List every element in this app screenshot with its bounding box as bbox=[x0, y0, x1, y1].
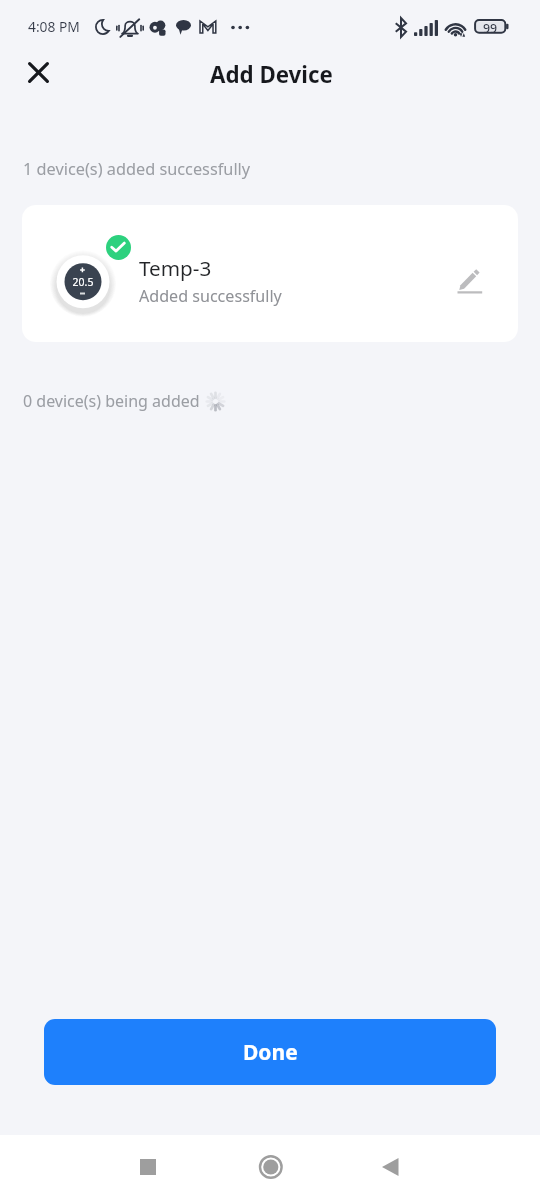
staticText: Temp-3 bbox=[139, 254, 212, 282]
staticText: 20.5 bbox=[68, 275, 98, 289]
button[interactable]: Close bbox=[18, 52, 58, 92]
staticText: 1 device(s) added successfully bbox=[23, 158, 251, 180]
staticText: 99 bbox=[483, 20, 498, 37]
staticText: 0 device(s) being added bbox=[23, 390, 200, 412]
staticText: 4:08 PM bbox=[28, 17, 80, 36]
button[interactable]: 20.5 bbox=[22, 205, 518, 342]
button[interactable]: Rename device bbox=[448, 258, 496, 306]
staticText: Added successfully bbox=[139, 285, 282, 307]
staticText: Add Device bbox=[210, 59, 333, 89]
staticText: Done bbox=[243, 1038, 298, 1067]
button[interactable]: Done bbox=[44, 1019, 496, 1085]
